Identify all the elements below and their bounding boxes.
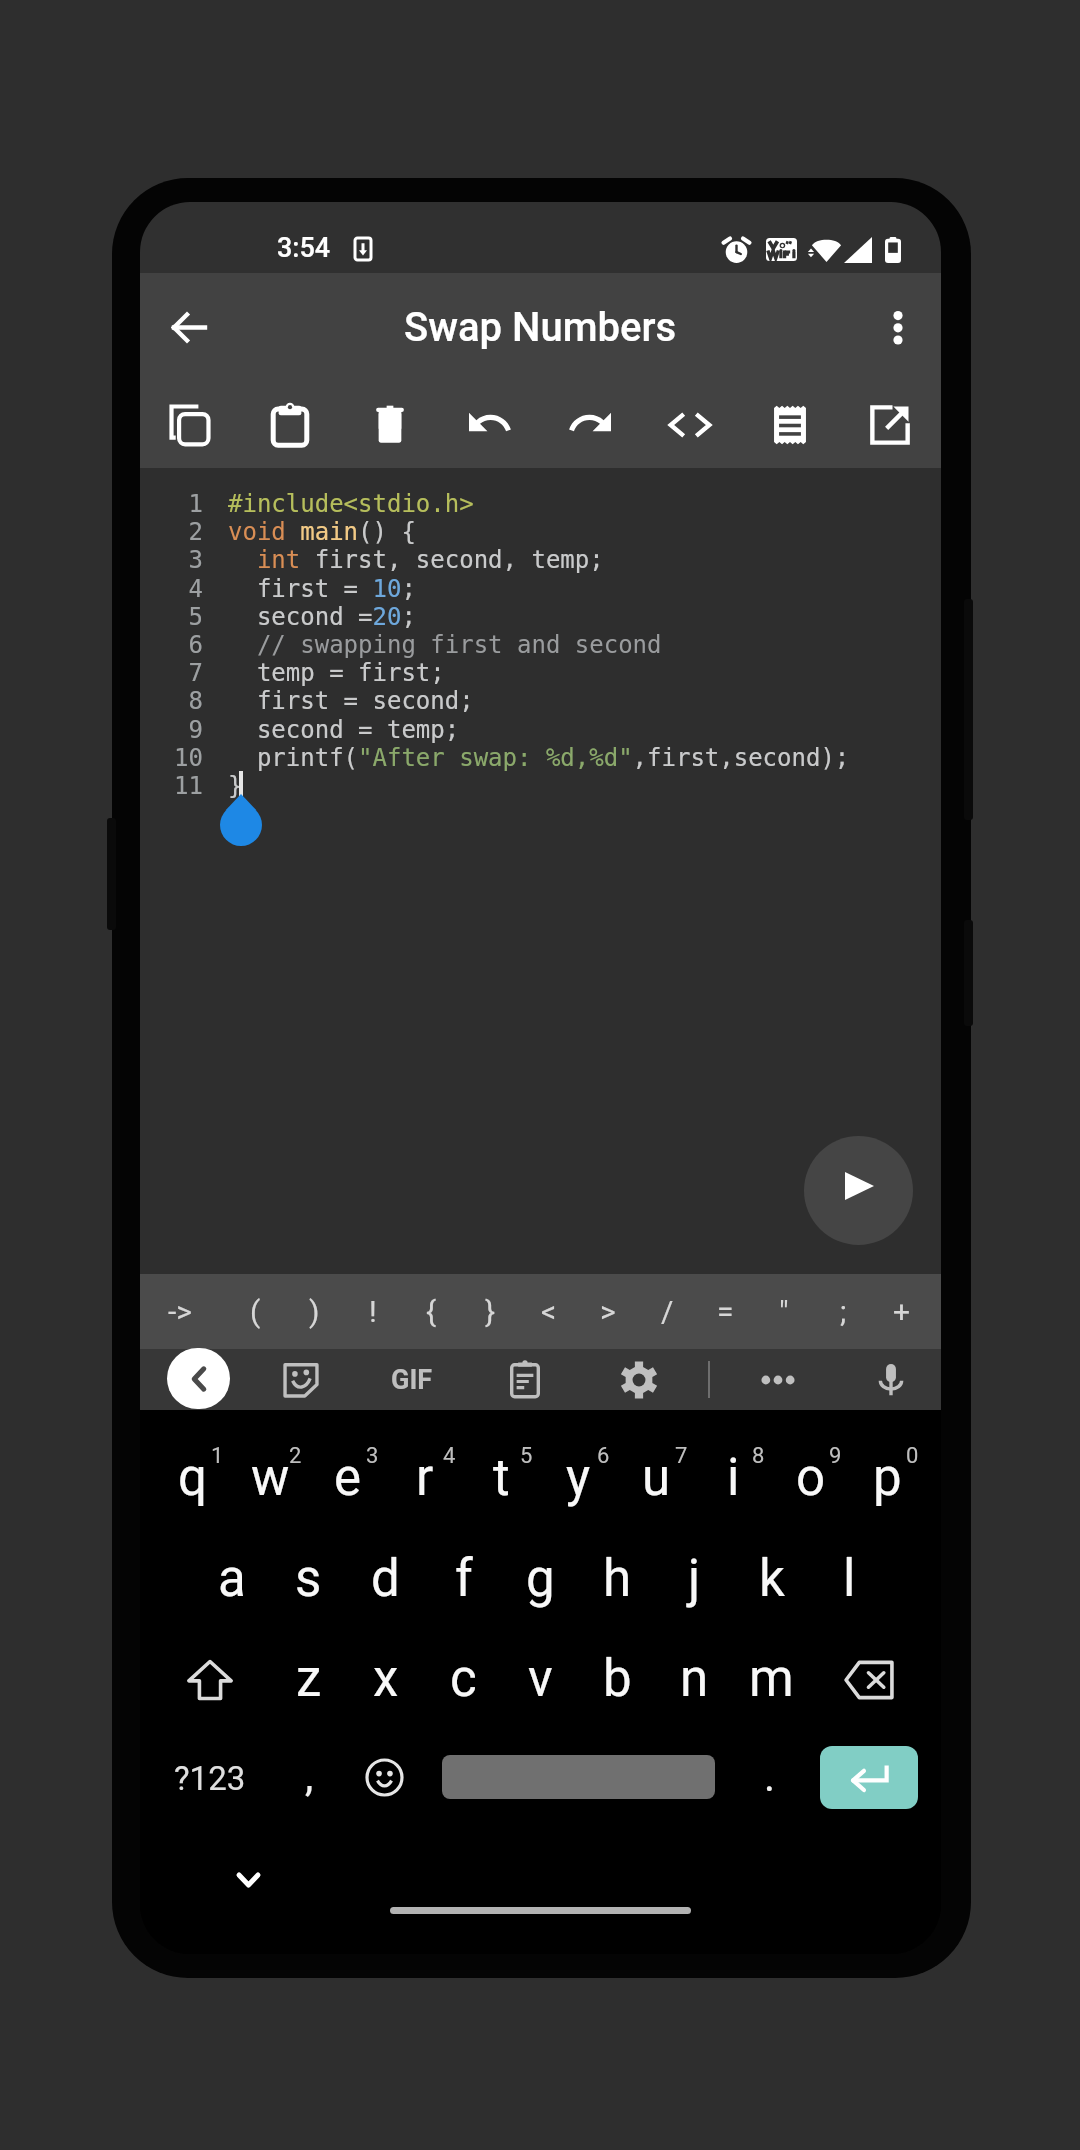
- button[interactable]: o: [772, 1422, 849, 1523]
- button[interactable]: !: [343, 1274, 403, 1349]
- button[interactable]: k: [733, 1528, 810, 1629]
- button[interactable]: ->: [150, 1274, 210, 1349]
- staticText: 4: [160, 575, 203, 603]
- button[interactable]: j: [656, 1528, 733, 1629]
- staticText: 6: [160, 631, 203, 659]
- staticText: 9: [160, 716, 203, 744]
- button[interactable]: Log: [746, 383, 834, 467]
- button[interactable]: s: [270, 1528, 347, 1629]
- button[interactable]: ": [754, 1274, 814, 1349]
- button[interactable]: Run: [804, 1136, 913, 1245]
- button[interactable]: u: [618, 1422, 695, 1523]
- staticText: 8: [752, 1443, 765, 1469]
- button[interactable]: e: [309, 1422, 386, 1523]
- staticText: printf("After swap: %d,%d",first,second)…: [228, 744, 850, 772]
- staticText: m: [749, 1649, 794, 1709]
- staticText: +: [893, 1294, 911, 1329]
- button[interactable]: Copy: [146, 383, 234, 467]
- button[interactable]: Hide keyboard: [218, 1850, 278, 1910]
- button[interactable]: More: [746, 1349, 810, 1410]
- button[interactable]: Delete: [346, 383, 434, 467]
- button[interactable]: ?123: [160, 1731, 260, 1826]
- button[interactable]: ,: [270, 1739, 348, 1834]
- button[interactable]: Sticker: [269, 1349, 333, 1410]
- staticText: 1: [211, 1443, 224, 1469]
- button[interactable]: r: [386, 1422, 463, 1523]
- staticText: 4: [443, 1443, 456, 1469]
- staticText: ,: [305, 1752, 314, 1801]
- button[interactable]: i: [695, 1422, 772, 1523]
- button[interactable]: w: [232, 1422, 309, 1523]
- staticText: o: [796, 1448, 826, 1508]
- button[interactable]: Clipboard: [493, 1349, 557, 1410]
- button[interactable]: t: [463, 1422, 540, 1523]
- staticText: v: [528, 1649, 553, 1709]
- button[interactable]: More options: [866, 295, 930, 359]
- button[interactable]: Undo: [446, 383, 534, 467]
- staticText: >: [600, 1294, 616, 1329]
- button[interactable]: d: [347, 1528, 424, 1629]
- staticText: w: [251, 1448, 290, 1508]
- button[interactable]: g: [502, 1528, 579, 1629]
- button[interactable]: Paste: [246, 383, 334, 467]
- button[interactable]: m: [733, 1628, 810, 1729]
- staticText: first = second;: [228, 687, 474, 715]
- staticText: 2: [160, 518, 203, 546]
- staticText: 9: [829, 1443, 842, 1469]
- button[interactable]: z: [270, 1628, 347, 1729]
- button[interactable]: Voice input: [859, 1349, 923, 1410]
- staticText: temp = first;: [228, 659, 445, 687]
- button[interactable]: Redo: [546, 383, 634, 467]
- button[interactable]: ): [284, 1274, 344, 1349]
- button[interactable]: <: [519, 1274, 579, 1349]
- button[interactable]: Backspace: [824, 1629, 914, 1730]
- button[interactable]: l: [811, 1528, 888, 1629]
- button[interactable]: a: [193, 1528, 270, 1629]
- button[interactable]: /: [637, 1274, 697, 1349]
- button[interactable]: x: [347, 1628, 424, 1729]
- button[interactable]: +: [872, 1274, 932, 1349]
- staticText: second =20;: [228, 603, 416, 631]
- staticText: 5: [520, 1443, 533, 1469]
- staticText: 3: [366, 1443, 379, 1469]
- button[interactable]: Back: [157, 295, 221, 359]
- button[interactable]: Settings: [607, 1349, 671, 1410]
- button[interactable]: q: [154, 1422, 231, 1523]
- button[interactable]: c: [425, 1628, 502, 1729]
- staticText: .: [764, 1752, 776, 1801]
- staticText: t: [493, 1448, 510, 1508]
- button[interactable]: Format code: [646, 383, 734, 467]
- staticText: 5: [160, 603, 203, 631]
- button[interactable]: Shift: [165, 1629, 255, 1730]
- button[interactable]: .: [731, 1739, 809, 1834]
- button[interactable]: =: [695, 1274, 755, 1349]
- button[interactable]: Enter: [820, 1746, 918, 1809]
- button[interactable]: Emoji: [345, 1730, 423, 1825]
- staticText: first = 10;: [228, 575, 416, 603]
- staticText: c: [450, 1649, 477, 1709]
- button[interactable]: }: [460, 1274, 520, 1349]
- button[interactable]: n: [656, 1628, 733, 1729]
- staticText: l: [843, 1549, 856, 1609]
- button[interactable]: (: [225, 1274, 285, 1349]
- button[interactable]: p: [849, 1422, 926, 1523]
- button[interactable]: b: [579, 1628, 656, 1729]
- button[interactable]: v: [502, 1628, 579, 1729]
- button[interactable]: GIF: [380, 1349, 444, 1410]
- staticText: GIF: [391, 1364, 433, 1396]
- button[interactable]: h: [579, 1528, 656, 1629]
- staticText: x: [373, 1649, 399, 1709]
- button[interactable]: >: [578, 1274, 638, 1349]
- button[interactable]: Share: [846, 383, 934, 467]
- staticText: g: [526, 1549, 555, 1609]
- button[interactable]: Swap Numbers: [404, 304, 677, 351]
- button[interactable]: ;: [813, 1274, 873, 1349]
- button[interactable]: f: [425, 1528, 502, 1629]
- button[interactable]: y: [540, 1422, 617, 1523]
- staticText: q: [178, 1448, 207, 1508]
- button[interactable]: Space: [442, 1755, 715, 1799]
- staticText: 1: [160, 490, 203, 518]
- staticText: d: [371, 1549, 400, 1609]
- button[interactable]: {: [401, 1274, 461, 1349]
- button[interactable]: Back: [167, 1348, 230, 1409]
